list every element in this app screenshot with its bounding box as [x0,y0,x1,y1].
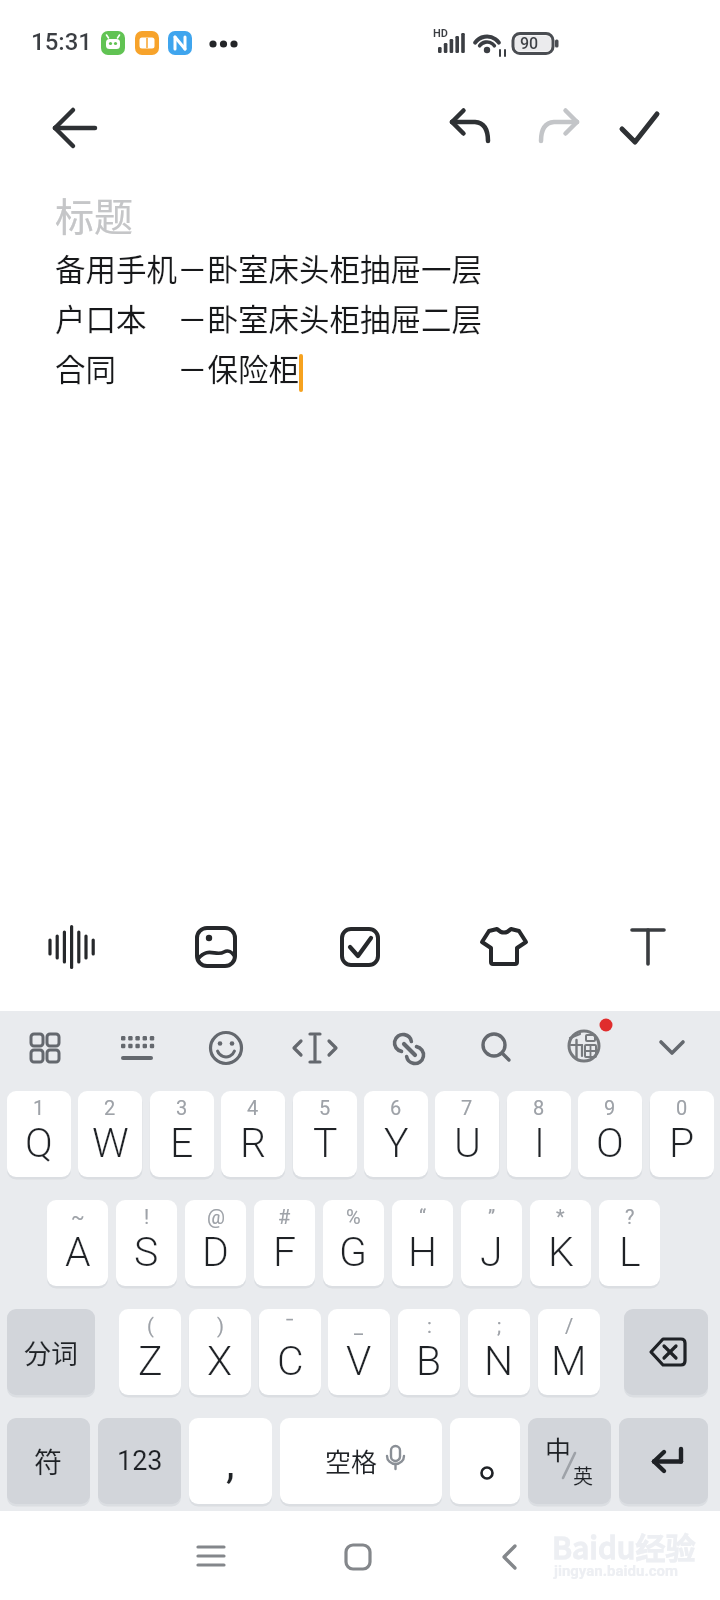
staticText: 标题 [55,186,134,242]
button[interactable]: 6 [364,1091,428,1177]
staticText: ? [625,1205,635,1228]
button[interactable]: ~ [47,1200,108,1286]
staticText: 15:31 [31,28,92,56]
staticText: 7 [461,1096,473,1119]
staticText: # [278,1205,291,1228]
staticText: ) [217,1314,224,1337]
button[interactable] [9,1012,81,1084]
button[interactable] [442,100,498,156]
button[interactable]: ; [468,1309,530,1395]
button[interactable] [639,1012,711,1084]
button[interactable]: ˉ [259,1309,321,1395]
staticText: P [669,1119,695,1167]
button[interactable] [99,1012,171,1084]
button[interactable]: “ [392,1200,453,1286]
staticText: _ [354,1314,364,1337]
button[interactable]: 2 [78,1091,142,1177]
button[interactable]: 9 [578,1091,642,1177]
staticText: jingyan.baidu.com [554,1562,679,1580]
staticText: C [277,1337,304,1385]
staticText: L [619,1228,641,1276]
button[interactable]: @ [185,1200,246,1286]
button[interactable] [624,1309,708,1395]
staticText: Y [384,1119,409,1167]
staticText: A [65,1228,91,1276]
button[interactable] [279,1012,351,1084]
staticText: K [548,1228,574,1276]
button[interactable] [592,911,704,983]
staticText: 3 [176,1096,188,1119]
staticText: HD [433,27,448,40]
button[interactable]: 空格 [280,1418,442,1504]
button[interactable] [459,1012,531,1084]
button[interactable]: * [530,1200,591,1286]
staticText: 符 [34,1441,63,1482]
button[interactable]: ! [116,1200,177,1286]
button[interactable] [189,1012,261,1084]
button[interactable]: 1 [7,1091,71,1177]
staticText: Z [138,1337,163,1385]
button[interactable] [322,1526,394,1586]
staticText: , [226,1437,235,1489]
button[interactable]: 中 [528,1418,611,1504]
staticText: E [170,1119,194,1167]
staticText: I [534,1119,545,1167]
button[interactable]: # [254,1200,315,1286]
staticText: X [207,1337,233,1385]
button[interactable]: 0 [650,1091,714,1177]
staticText: J [480,1228,503,1276]
staticText: 备用手机－卧室床头柜抽屉一层 户口本 －卧室床头柜抽屉二层 合同 －保险柜 [55,246,482,390]
staticText: * [556,1205,565,1228]
staticText: Q [25,1119,53,1167]
button[interactable] [40,100,106,156]
button[interactable]: 4 [221,1091,285,1177]
staticText: % [346,1205,361,1228]
staticText: 空格 [325,1442,378,1480]
staticText: H [408,1228,438,1276]
staticText: T [313,1119,338,1167]
button[interactable]: / [538,1309,600,1395]
button[interactable] [612,100,668,156]
staticText: @ [207,1205,225,1228]
button[interactable] [369,1012,441,1084]
staticText: U [454,1119,481,1167]
staticText: 英 [573,1461,593,1490]
button[interactable] [160,911,272,983]
button[interactable]: : [398,1309,460,1395]
button[interactable] [16,911,128,983]
button[interactable]: ” [461,1200,522,1286]
staticText: ˉ [285,1314,295,1337]
button[interactable]: 5 [293,1091,357,1177]
button[interactable]: , [189,1418,272,1504]
button[interactable] [448,911,560,983]
staticText: / [565,1314,574,1337]
button[interactable] [549,1012,621,1084]
staticText: ” [488,1205,496,1228]
button[interactable] [619,1418,708,1504]
button[interactable]: % [323,1200,384,1286]
staticText: “ [419,1205,427,1228]
button[interactable]: ? [599,1200,660,1286]
button[interactable]: ( [119,1309,181,1395]
button[interactable]: 123 [98,1418,181,1504]
button[interactable]: 符 [7,1418,90,1504]
staticText: M [551,1337,587,1385]
button[interactable] [474,1526,546,1586]
staticText: : [427,1314,432,1337]
button[interactable] [175,1526,247,1586]
button[interactable] [527,100,583,156]
button[interactable]: _ [328,1309,390,1395]
button[interactable] [304,911,416,983]
button[interactable]: 3 [150,1091,214,1177]
staticText: 0 [676,1096,688,1119]
staticText: 5 [319,1096,331,1119]
button[interactable]: 分词 [7,1309,95,1395]
button[interactable] [450,1418,520,1504]
staticText: G [339,1228,368,1276]
staticText: 中 [545,1430,572,1468]
button[interactable]: ) [189,1309,251,1395]
button[interactable]: 7 [435,1091,499,1177]
staticText: Baidu经验 [552,1524,696,1567]
staticText: R [240,1119,267,1167]
button[interactable]: 8 [507,1091,571,1177]
